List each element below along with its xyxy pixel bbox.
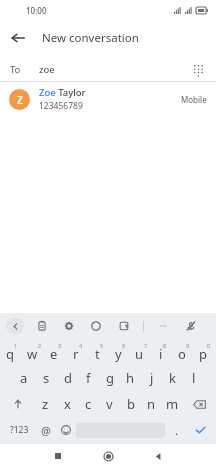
staticText: 0 — [207, 342, 211, 349]
staticText: . — [175, 423, 178, 438]
staticText: 3 — [58, 342, 62, 349]
staticText: Mobile — [181, 94, 207, 105]
button[interactable]: Home — [96, 444, 120, 468]
button[interactable]: Settings — [60, 317, 78, 335]
staticText: 5 — [100, 342, 104, 349]
button[interactable]: h — [120, 367, 141, 389]
staticText: To — [10, 63, 21, 76]
button[interactable]: g — [99, 367, 120, 389]
staticText: Z — [17, 93, 23, 107]
button[interactable]: @ — [36, 419, 56, 441]
staticText: j — [150, 369, 154, 387]
staticText: k — [169, 369, 176, 387]
button[interactable]: Voice input off — [182, 317, 200, 335]
staticText: o — [178, 345, 186, 363]
button[interactable]: c — [78, 393, 99, 415]
button[interactable]: Dialpad — [186, 57, 210, 81]
staticText: c — [85, 395, 92, 413]
staticText: h — [126, 369, 135, 387]
button[interactable]: Themes — [87, 317, 105, 335]
staticText: q — [6, 345, 14, 363]
button[interactable]: y — [110, 341, 131, 363]
button[interactable]: z — [34, 393, 56, 415]
staticText: y — [115, 345, 122, 363]
button[interactable]: u — [131, 341, 152, 363]
staticText: p — [199, 345, 207, 363]
staticText: ?123 — [10, 424, 29, 436]
button[interactable]: l — [183, 367, 204, 389]
staticText: f — [86, 369, 91, 387]
staticText: 7 — [144, 342, 148, 349]
staticText: u — [135, 345, 144, 363]
staticText: a — [20, 369, 28, 387]
button[interactable]: More options — [154, 317, 172, 335]
staticText: t — [95, 345, 100, 363]
button[interactable]: p — [194, 341, 215, 363]
button[interactable]: t — [89, 341, 110, 363]
staticText: 8 — [163, 342, 167, 349]
staticText: 1 — [14, 342, 18, 349]
staticText: @ — [41, 423, 51, 438]
staticText: m — [166, 395, 179, 413]
button[interactable]: Shift — [1, 393, 34, 415]
staticText: r — [73, 345, 79, 363]
staticText: g — [106, 369, 114, 387]
button[interactable]: Z — [0, 82, 216, 116]
button[interactable]: ?123 — [3, 419, 36, 441]
staticText: Zoe Taylor — [39, 86, 86, 99]
button[interactable]: Recents — [46, 444, 70, 468]
staticText: x — [64, 395, 71, 413]
button[interactable]: s — [35, 367, 57, 389]
staticText: 6 — [122, 342, 126, 349]
staticText: v — [106, 395, 113, 413]
button[interactable]: Back — [146, 444, 170, 468]
staticText: b — [127, 395, 135, 413]
button[interactable]: w — [23, 341, 45, 363]
button[interactable]: Expand toolbar — [6, 317, 24, 335]
button[interactable]: . — [165, 419, 187, 441]
staticText: 4 — [79, 342, 83, 349]
button[interactable]: f — [78, 367, 99, 389]
button[interactable]: q — [1, 341, 23, 363]
staticText: w — [27, 345, 38, 363]
staticText: 9 — [186, 342, 190, 349]
staticText: s — [43, 369, 50, 387]
staticText: zoe — [39, 63, 55, 76]
button[interactable]: j — [141, 367, 162, 389]
button[interactable]: Clipboard — [33, 317, 51, 335]
staticText: n — [147, 395, 156, 413]
button[interactable]: x — [56, 393, 78, 415]
button[interactable]: n — [141, 393, 162, 415]
button[interactable]: Done — [187, 419, 213, 441]
button[interactable]: b — [120, 393, 141, 415]
staticText: i — [159, 345, 163, 363]
button[interactable]: e — [45, 341, 67, 363]
button[interactable]: One-handed mode — [115, 317, 133, 335]
staticText: d — [64, 369, 72, 387]
staticText: 2 — [38, 342, 42, 349]
button[interactable]: d — [57, 367, 78, 389]
button[interactable]: a — [13, 367, 35, 389]
staticText: 123456789 — [39, 100, 83, 112]
staticText: l — [192, 369, 196, 387]
button[interactable]: Emoji — [56, 419, 76, 441]
button[interactable]: Backspace — [183, 393, 215, 415]
staticText: z — [42, 395, 49, 413]
button[interactable]: i — [152, 341, 173, 363]
button[interactable]: k — [162, 367, 183, 389]
button[interactable]: o — [173, 341, 194, 363]
staticText: 10:00 — [26, 5, 47, 16]
button[interactable]: v — [99, 393, 120, 415]
staticText: e — [50, 345, 58, 363]
button[interactable]: Back — [0, 20, 36, 56]
staticText: New conversation — [42, 30, 139, 46]
button[interactable]: r — [67, 341, 89, 363]
button[interactable]: m — [162, 393, 183, 415]
